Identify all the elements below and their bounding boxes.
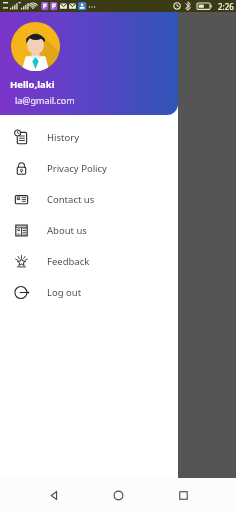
button[interactable]: Privacy Policy	[0, 153, 178, 184]
staticText: 2:26	[218, 1, 234, 12]
staticText: Hello,laki	[10, 78, 55, 91]
button[interactable]	[0, 12, 236, 478]
staticText: +200	[175, 98, 205, 116]
button[interactable]: Log out	[0, 277, 178, 308]
button[interactable]: History	[0, 122, 178, 153]
staticText: History	[47, 131, 79, 144]
button[interactable]: History	[160, 58, 230, 80]
button[interactable]: About us	[0, 215, 178, 246]
button[interactable]: Back	[42, 484, 64, 506]
staticText: About us	[47, 224, 87, 237]
staticText: Contact us	[47, 193, 95, 206]
button[interactable]: Feedback	[0, 246, 178, 277]
staticText: Privacy Policy	[47, 162, 107, 175]
button[interactable]: +200	[175, 98, 225, 135]
staticText: Log out	[47, 286, 82, 299]
button[interactable]: Profile picture	[11, 22, 60, 71]
button[interactable]: Recent apps	[172, 484, 194, 506]
button[interactable]: Contact us	[0, 184, 178, 215]
button[interactable]: Home	[107, 484, 129, 506]
staticText: la@gmail.com	[15, 94, 75, 106]
staticText: Feedback	[47, 255, 90, 268]
